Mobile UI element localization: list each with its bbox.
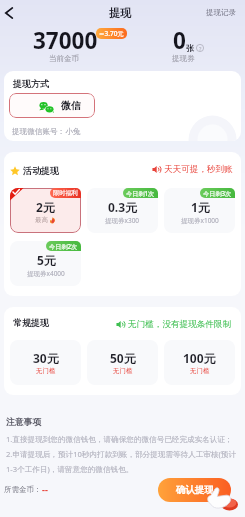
button[interactable]: 提现记录 [204,6,238,19]
staticText: 提现券 [172,54,195,63]
button[interactable]: 2元 [10,188,81,233]
staticText: 所需金币： [4,485,42,494]
staticText: 2.申请提现后，预计10秒内打款到账，部分提现需等待人工审核(预计1-3个工作日… [6,449,241,475]
staticText: 提现记录 [206,8,236,17]
staticText: 当前金币 [49,54,79,63]
staticText: 活动提现 [23,165,59,176]
staticText: 50元 [110,350,136,366]
staticText: 0.3元 [108,199,138,215]
button[interactable]: 0.3元 [87,188,158,233]
button[interactable]: 微信 [9,93,95,118]
staticText: 微信 [61,100,81,112]
button[interactable]: Help [196,44,204,52]
staticText: 37000 [33,25,98,56]
button[interactable]: 50元 [87,340,158,385]
button[interactable]: 100元 [164,340,235,385]
staticText: 提现 [109,6,131,20]
staticText: 无门槛 [190,367,210,375]
staticText: 最高 [35,216,48,224]
staticText: 今日剩2次 [49,242,78,250]
staticText: 5元 [37,252,56,268]
staticText: 100元 [183,350,216,366]
staticText: 今日剩3次 [203,189,232,197]
button[interactable]: 30元 [10,340,81,385]
staticText: 无门槛 [113,367,133,375]
staticText: 提现方式 [13,78,49,89]
staticText: 1.直接提现到您的微信钱包，请确保您的微信号已经完成实名认证； [6,434,233,444]
staticText: 注意事项 [6,417,42,428]
staticText: 30元 [33,350,59,366]
button[interactable]: 确认提现 [158,478,231,502]
staticText: ≈3.70元 [99,29,124,38]
staticText: -- [42,483,48,495]
staticText: 无门槛，没有提现条件限制 [128,319,232,330]
staticText: 0 [173,25,186,56]
button[interactable]: 1元 [164,188,235,233]
staticText: 常规提现 [13,317,49,328]
staticText: 天天可提，秒到账 [164,164,233,175]
staticText: 提现微信账号：小兔 [12,127,81,137]
staticText: 张 [186,43,194,53]
staticText: 提现券x4000 [27,269,65,278]
button[interactable]: 5元 [10,241,81,286]
staticText: 提现券x300 [105,216,140,225]
staticText: 今日剩1次 [126,189,155,197]
staticText: 确认提现 [176,484,214,496]
staticText: 2元 [36,199,55,215]
staticText: ? [199,45,202,52]
staticText: 无门槛 [36,367,56,375]
staticText: 1元 [191,199,210,215]
staticText: 限时福利 [53,189,78,197]
staticText: 提现券x1000 [181,216,219,225]
button[interactable]: Back [0,2,20,24]
